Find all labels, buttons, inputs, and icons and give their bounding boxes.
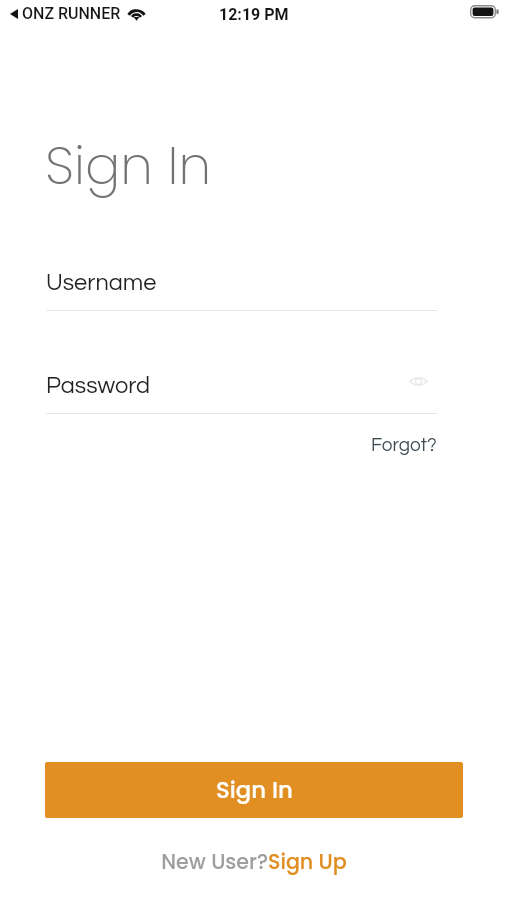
staticText: ONZ RUNNER: [22, 4, 121, 23]
button[interactable]: Username: [46, 267, 437, 311]
staticText: Forgot?: [371, 435, 437, 455]
button[interactable]: Sign In: [45, 762, 463, 818]
staticText: Sign In: [216, 774, 293, 806]
button[interactable]: Password: [46, 370, 437, 414]
button[interactable]: Forgot?: [363, 430, 445, 460]
staticText: Password: [46, 374, 151, 398]
button[interactable]: New User?Sign Up: [153, 842, 355, 881]
staticText: Sign In: [45, 129, 212, 202]
button[interactable]: Show password: [401, 364, 435, 398]
staticText: New User?Sign Up: [161, 847, 347, 876]
staticText: Username: [46, 271, 157, 295]
staticText: 12:19 PM: [219, 5, 289, 24]
